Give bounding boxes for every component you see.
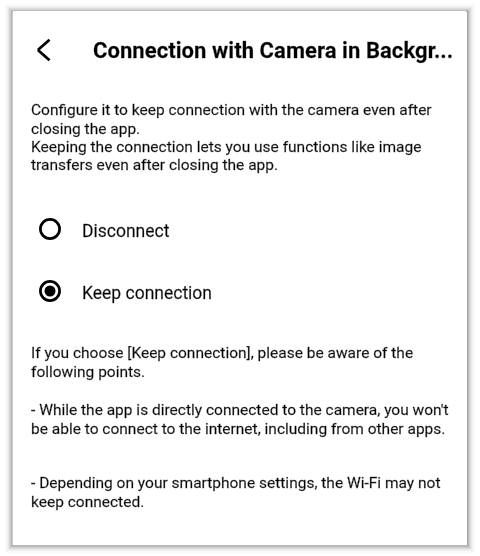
- button[interactable]: Disconnect: [26, 205, 356, 253]
- staticText: Configure it to keep connection with the…: [31, 101, 432, 173]
- staticText: - While the app is directly connected to…: [31, 401, 449, 437]
- staticText: - Depending on your smartphone settings,…: [31, 474, 441, 510]
- staticText: Disconnect: [82, 221, 170, 242]
- button[interactable]: Navigate up: [13, 26, 61, 74]
- button[interactable]: Keep connection: [26, 267, 356, 315]
- staticText: If you choose [Keep connection], please …: [31, 344, 414, 380]
- staticText: Connection with Camera in Backgr...: [93, 38, 454, 64]
- staticText: Keep connection: [82, 283, 213, 304]
